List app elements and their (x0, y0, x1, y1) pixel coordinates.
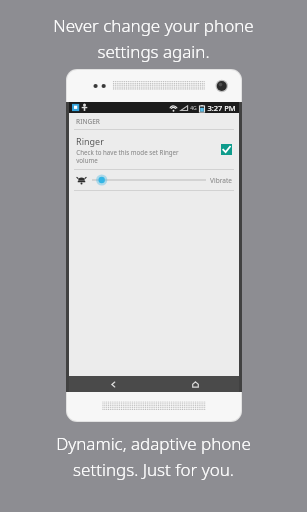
staticText: RINGER (76, 117, 100, 126)
button[interactable]: Back (105, 376, 121, 392)
button[interactable]: Vibrate (69, 170, 239, 190)
button[interactable]: Ringer enabled checkbox (221, 144, 232, 155)
button[interactable]: Ringer volume slider (92, 174, 206, 186)
staticText: volume (76, 156, 98, 164)
staticText: Dynamic, adaptive phone (56, 432, 251, 455)
staticText: settings. Just for you. (73, 458, 234, 481)
staticText: 3:27 PM (207, 103, 236, 113)
staticText: Ringer (76, 135, 104, 147)
staticText: Check to have this mode set Ringer (76, 148, 179, 156)
button[interactable]: Ringer (69, 130, 239, 169)
staticText: Vibrate (210, 176, 232, 185)
staticText: 4G (190, 105, 197, 112)
staticText: settings again. (97, 40, 210, 63)
other: Vibrate (76, 175, 87, 186)
button[interactable]: Home (187, 376, 203, 392)
staticText: Never change your phone (53, 14, 254, 37)
